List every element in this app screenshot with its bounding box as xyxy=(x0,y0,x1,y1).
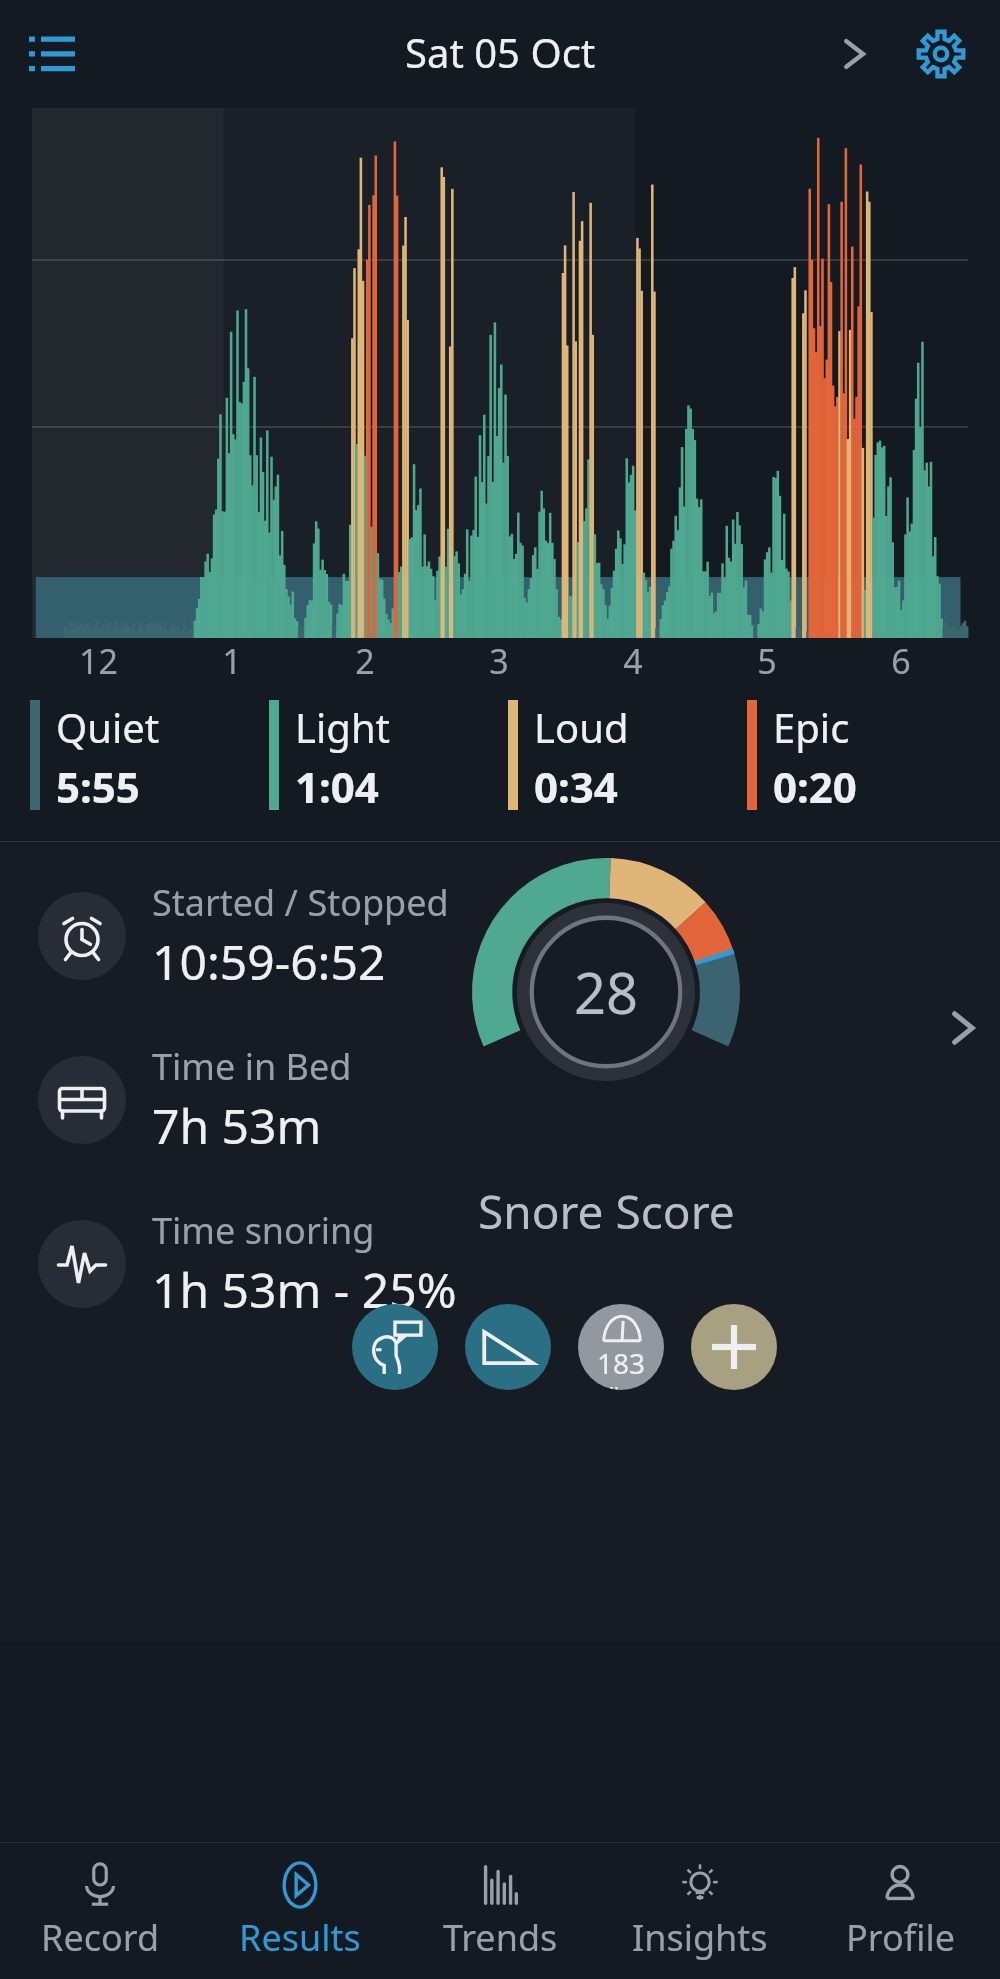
staticText: 6 xyxy=(891,638,911,684)
staticText: Trends xyxy=(443,1913,558,1962)
staticText: 5 xyxy=(757,638,777,684)
button[interactable]: More details xyxy=(934,1000,990,1056)
staticText: 5:55 xyxy=(56,758,140,815)
staticText: Insights xyxy=(632,1913,768,1962)
staticText: Loud xyxy=(534,700,629,754)
button[interactable]: Add xyxy=(691,1304,777,1390)
staticText: 10:59-6:52 xyxy=(152,929,386,994)
staticText: 183 xyxy=(597,1344,646,1382)
staticText: Started / Stopped xyxy=(152,878,449,927)
staticText: Time in Bed xyxy=(152,1042,352,1091)
staticText: lbs xyxy=(609,1382,635,1390)
button[interactable]: Weight 183 lbs xyxy=(578,1304,664,1390)
staticText: Quiet xyxy=(56,700,160,754)
staticText: 4 xyxy=(623,638,643,684)
staticText: 28 xyxy=(574,954,639,1030)
button[interactable]: Record xyxy=(0,1843,200,1979)
button[interactable]: Trend xyxy=(465,1304,551,1390)
staticText: Epic xyxy=(773,700,850,754)
staticText: 1:04 xyxy=(295,758,379,815)
button[interactable]: Trends xyxy=(400,1843,600,1979)
button[interactable]: Started / Stopped xyxy=(38,878,1000,994)
staticText: 1 xyxy=(222,638,242,684)
button[interactable]: Next day xyxy=(826,26,882,82)
staticText: Profile xyxy=(846,1913,955,1962)
button[interactable]: Loud xyxy=(508,700,747,815)
staticText: 2 xyxy=(355,638,375,684)
staticText: Light xyxy=(295,700,391,754)
staticText: Results xyxy=(239,1913,361,1962)
staticText: 1h 53m - 25% xyxy=(152,1257,457,1322)
button[interactable]: Settings xyxy=(906,19,976,89)
staticText: Sat 05 Oct xyxy=(405,25,596,79)
staticText: 0:34 xyxy=(534,758,618,815)
button[interactable]: Epic xyxy=(747,700,986,815)
staticText: Record xyxy=(41,1913,160,1962)
button[interactable]: Snore sounds xyxy=(352,1304,438,1390)
staticText: 3 xyxy=(489,638,509,684)
button[interactable]: Quiet xyxy=(30,700,269,815)
staticText: Snore Score xyxy=(478,1180,735,1243)
staticText: 12 xyxy=(79,638,118,684)
button[interactable]: Light xyxy=(269,700,508,815)
button[interactable]: Profile xyxy=(800,1843,1000,1979)
button[interactable]: Menu xyxy=(16,18,88,90)
button[interactable]: Time in Bed xyxy=(38,1042,1000,1158)
staticText: Time snoring xyxy=(152,1206,375,1255)
button[interactable]: Time snoring xyxy=(38,1206,1000,1322)
button[interactable]: Insights xyxy=(600,1843,800,1979)
staticText: 0:20 xyxy=(773,758,857,815)
staticText: 7h 53m xyxy=(152,1093,322,1158)
button[interactable]: Results xyxy=(200,1843,400,1979)
button[interactable]: Snore score 28 xyxy=(472,858,740,1126)
